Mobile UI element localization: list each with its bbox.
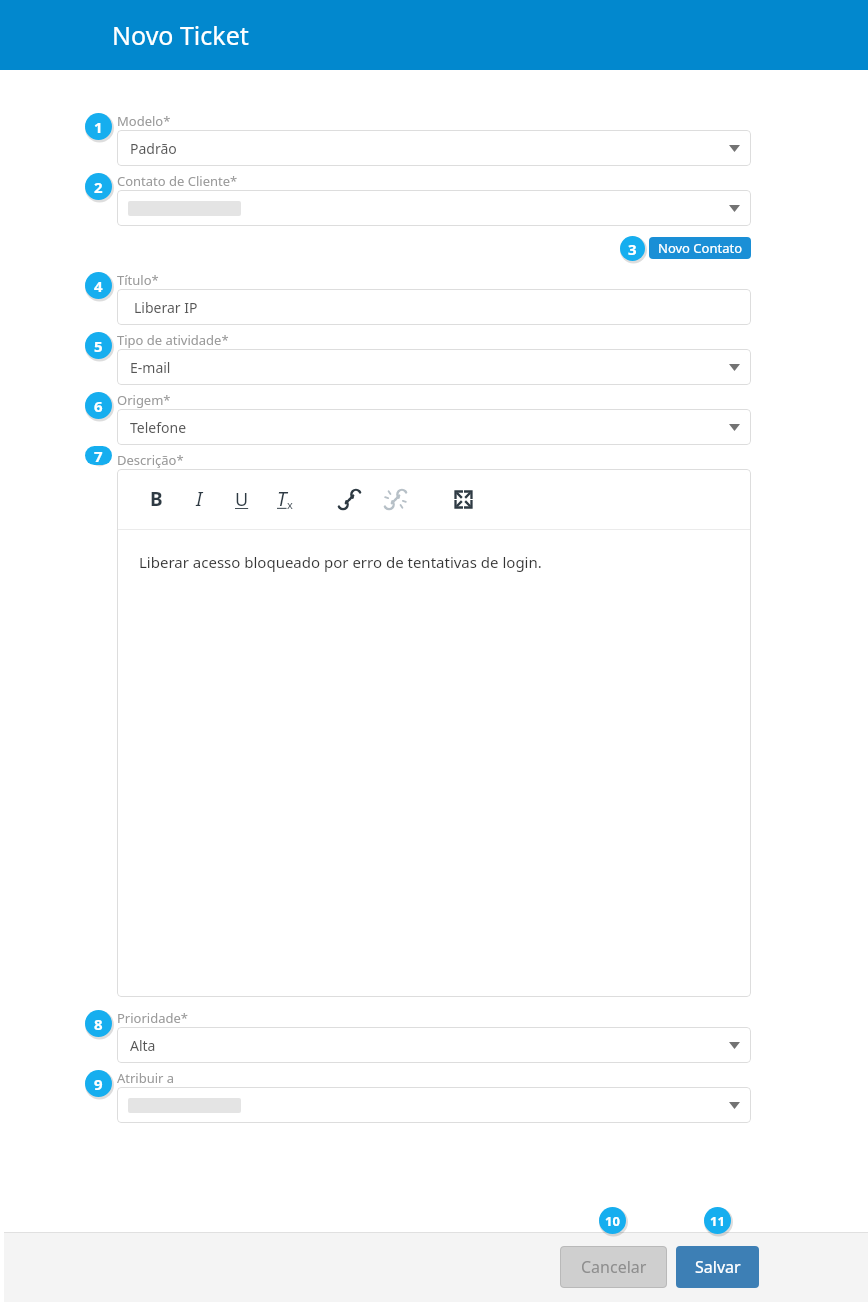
staticText: Novo Contato (658, 239, 742, 257)
staticText: 9 (94, 1074, 103, 1094)
staticText: x (287, 497, 293, 512)
staticText: 8 (94, 1014, 103, 1034)
button[interactable]: Remove formatting (268, 482, 302, 516)
staticText: Prioridade* (117, 1009, 188, 1027)
staticText: Salvar (695, 1256, 741, 1278)
button[interactable]: Liberar acesso bloqueado por erro de ten… (117, 530, 751, 997)
staticText: B (150, 486, 163, 512)
staticText: Contato de Cliente* (117, 172, 238, 190)
staticText: Alta (130, 1036, 156, 1055)
button[interactable]: Remove link (378, 482, 412, 516)
button[interactable]: Salvar (676, 1246, 759, 1288)
staticText: U (235, 487, 249, 512)
staticText: Telefone (130, 418, 187, 437)
staticText: 6 (94, 396, 103, 416)
staticText: 3 (628, 239, 637, 259)
staticText: 11 (710, 1212, 725, 1230)
staticText: Cancelar (581, 1256, 647, 1278)
staticText: 4 (94, 276, 103, 296)
staticText: Padrão (130, 139, 177, 158)
staticText: 2 (94, 177, 103, 197)
staticText: 1 (94, 117, 103, 137)
button[interactable]: Insert link (332, 482, 366, 516)
button[interactable]: Bold (139, 482, 173, 516)
staticText: Liberar IP (134, 298, 198, 317)
button[interactable]: Underline (225, 482, 259, 516)
staticText: Novo Ticket (112, 18, 249, 52)
staticText: Atribuir a (117, 1069, 175, 1087)
button[interactable]: Liberar IP (117, 289, 751, 325)
staticText: 10 (605, 1212, 620, 1230)
button[interactable]: Padrão (117, 130, 751, 166)
staticText: Descrição* (117, 451, 184, 469)
staticText: 7 (94, 446, 103, 465)
staticText: Título* (117, 271, 159, 289)
staticText: 5 (94, 336, 103, 356)
staticText: Tipo de atividade* (117, 331, 229, 349)
staticText: Modelo* (117, 112, 171, 130)
staticText: T (277, 486, 287, 512)
staticText: Liberar acesso bloqueado por erro de ten… (139, 552, 542, 572)
button[interactable]: Novo Contato (649, 237, 751, 259)
button[interactable]: Cancelar (560, 1246, 667, 1288)
staticText: E-mail (130, 358, 171, 377)
staticText: I (196, 486, 203, 512)
button[interactable]: Alta (117, 1027, 751, 1063)
button[interactable]: Fullscreen (446, 482, 480, 516)
button[interactable] (117, 1087, 751, 1123)
staticText: Origem* (117, 391, 171, 409)
button[interactable]: E-mail (117, 349, 751, 385)
button[interactable]: Italic (182, 482, 216, 516)
button[interactable] (117, 190, 751, 226)
button[interactable]: Telefone (117, 409, 751, 445)
